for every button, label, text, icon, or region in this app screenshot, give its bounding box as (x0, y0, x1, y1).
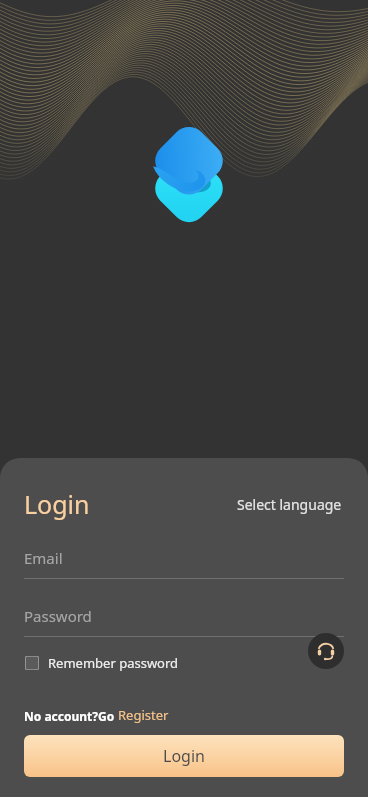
button[interactable]: Login (24, 735, 344, 777)
staticText: Password (24, 606, 92, 626)
staticText: Select language (237, 495, 342, 514)
staticText: Login (163, 745, 205, 767)
staticText: Register (118, 706, 169, 724)
button[interactable]: Select language (235, 491, 344, 518)
staticText: Email (24, 548, 63, 568)
staticText: Remember password (48, 654, 179, 672)
button[interactable]: Remember password (24, 650, 180, 676)
button[interactable]: Customer support (308, 633, 344, 669)
staticText: Login (24, 487, 90, 521)
button[interactable]: No account?Go (24, 704, 169, 726)
staticText: No account?Go (24, 708, 115, 724)
button[interactable]: Password (24, 606, 344, 637)
button[interactable]: Email (24, 548, 344, 579)
